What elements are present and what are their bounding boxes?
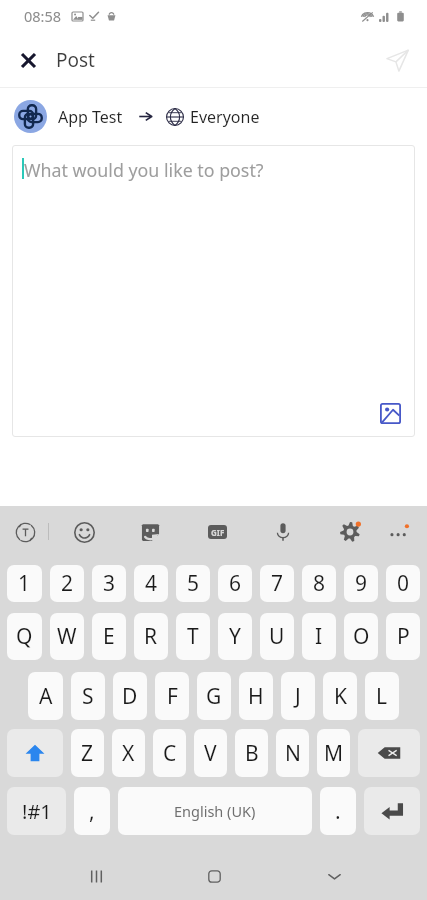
button[interactable]: K: [323, 672, 357, 720]
staticText: D: [122, 682, 138, 711]
staticText: W: [57, 622, 77, 651]
button[interactable]: Close: [12, 44, 44, 76]
staticText: .: [335, 797, 341, 826]
button[interactable]: Add image: [377, 400, 403, 426]
button[interactable]: D: [113, 672, 147, 720]
button[interactable]: 4: [134, 565, 168, 602]
button[interactable]: 1: [7, 565, 42, 602]
staticText: Post: [56, 47, 95, 73]
staticText: G: [206, 682, 222, 711]
button[interactable]: Profile: [14, 100, 47, 133]
button[interactable]: A: [28, 672, 63, 720]
staticText: 08:58: [24, 6, 62, 26]
button[interactable]: 2: [50, 565, 84, 602]
button[interactable]: 7: [260, 565, 294, 602]
button[interactable]: O: [344, 613, 378, 660]
staticText: !#1: [22, 798, 52, 825]
button[interactable]: Q: [7, 613, 42, 660]
staticText: A: [39, 682, 53, 711]
button[interactable]: Voice input: [267, 516, 299, 548]
button[interactable]: English (UK): [118, 787, 312, 835]
button[interactable]: 8: [302, 565, 336, 602]
staticText: F: [167, 682, 178, 711]
staticText: H: [248, 682, 264, 711]
button[interactable]: F: [155, 672, 189, 720]
button[interactable]: V: [194, 729, 227, 777]
staticText: P: [397, 622, 410, 651]
button[interactable]: Translate: [9, 516, 41, 548]
staticText: Everyone: [190, 106, 260, 128]
staticText: K: [334, 682, 347, 711]
button[interactable]: .: [320, 787, 356, 835]
button[interactable]: 6: [218, 565, 252, 602]
staticText: O: [353, 622, 370, 651]
button[interactable]: S: [71, 672, 105, 720]
staticText: Z: [81, 739, 94, 768]
button[interactable]: What would you like to post?: [12, 145, 415, 437]
staticText: S: [82, 682, 94, 711]
staticText: 7: [271, 569, 284, 598]
button[interactable]: N: [276, 729, 309, 777]
staticText: 4: [145, 569, 158, 598]
staticText: T: [187, 622, 199, 651]
staticText: E: [103, 622, 115, 651]
staticText: 8: [313, 569, 326, 598]
button[interactable]: G: [197, 672, 231, 720]
staticText: U: [269, 622, 285, 651]
button[interactable]: J: [281, 672, 315, 720]
button[interactable]: GIF: [201, 516, 233, 548]
button[interactable]: 3: [92, 565, 126, 602]
staticText: What would you like to post?: [24, 158, 264, 182]
button[interactable]: X: [112, 729, 145, 777]
staticText: 9: [355, 569, 368, 598]
staticText: L: [376, 682, 388, 711]
staticText: ,: [89, 797, 95, 826]
button[interactable]: 5: [176, 565, 210, 602]
button[interactable]: W: [50, 613, 84, 660]
button[interactable]: E: [92, 613, 126, 660]
button[interactable]: Enter: [364, 787, 420, 835]
button[interactable]: 9: [344, 565, 378, 602]
button[interactable]: C: [153, 729, 186, 777]
staticText: X: [122, 739, 135, 768]
button[interactable]: H: [239, 672, 273, 720]
staticText: 3: [103, 569, 116, 598]
staticText: C: [163, 739, 177, 768]
button[interactable]: !#1: [7, 787, 66, 835]
button[interactable]: P: [386, 613, 420, 660]
staticText: 5: [187, 569, 200, 598]
button[interactable]: U: [260, 613, 294, 660]
button[interactable]: Settings: [334, 516, 366, 548]
button[interactable]: R: [134, 613, 168, 660]
staticText: GIF: [211, 527, 225, 538]
button[interactable]: I: [302, 613, 336, 660]
staticText: English (UK): [174, 801, 256, 821]
button[interactable]: Emoji: [68, 516, 100, 548]
button[interactable]: More options: [383, 516, 415, 548]
staticText: 1: [18, 569, 31, 598]
button[interactable]: Z: [71, 729, 104, 777]
button[interactable]: Home: [192, 854, 236, 898]
staticText: V: [204, 739, 217, 768]
staticText: App Test: [58, 106, 123, 128]
button[interactable]: M: [317, 729, 350, 777]
staticText: R: [144, 622, 158, 651]
staticText: 0: [397, 569, 410, 598]
button[interactable]: Backspace: [358, 729, 420, 777]
button[interactable]: Recents: [74, 854, 118, 898]
staticText: B: [245, 739, 259, 768]
button[interactable]: Y: [218, 613, 252, 660]
button[interactable]: Everyone: [166, 106, 260, 128]
button[interactable]: Hide keyboard: [312, 854, 356, 898]
button[interactable]: Stickers: [134, 516, 166, 548]
button[interactable]: T: [176, 613, 210, 660]
button[interactable]: Send post: [377, 40, 417, 80]
button[interactable]: 0: [386, 565, 420, 602]
button[interactable]: B: [235, 729, 268, 777]
staticText: 2: [61, 569, 74, 598]
button[interactable]: Shift: [7, 729, 63, 777]
button[interactable]: ,: [74, 787, 110, 835]
staticText: Q: [16, 622, 33, 651]
staticText: N: [285, 739, 301, 768]
button[interactable]: L: [365, 672, 399, 720]
